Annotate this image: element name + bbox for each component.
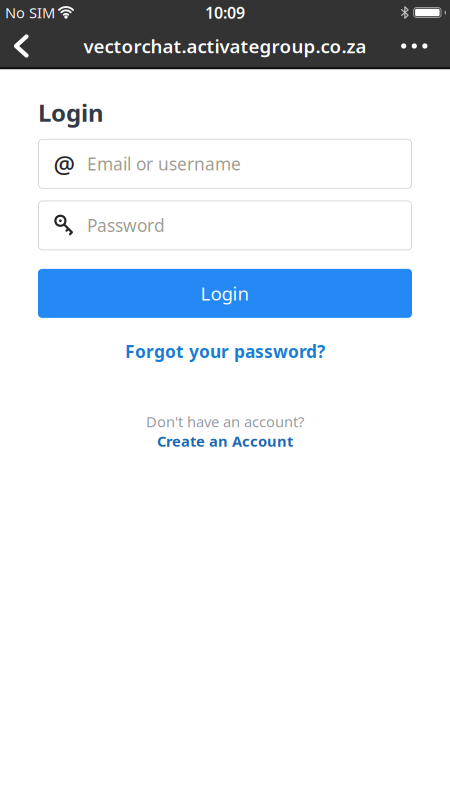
staticText: Login: [200, 281, 249, 306]
button[interactable]: Forgot your password?: [38, 340, 412, 363]
staticText: Password: [87, 214, 165, 237]
staticText: Email or username: [87, 152, 241, 175]
staticText: Login: [38, 96, 104, 128]
staticText: No SIM: [5, 3, 55, 22]
button[interactable]: Login: [38, 269, 412, 318]
secureTextField[interactable]: Password: [87, 214, 412, 237]
staticText: Create an Account: [157, 431, 293, 451]
staticText: Forgot your password?: [125, 340, 325, 363]
staticText: 10:09: [205, 2, 245, 23]
button[interactable]: Create an Account: [157, 431, 293, 451]
staticText: @: [53, 148, 75, 180]
staticText: Don't have an account?: [146, 412, 304, 431]
textField[interactable]: Email or username: [87, 152, 412, 175]
button[interactable]: Back: [0, 28, 26, 63]
staticText: vectorchat.activategroup.co.za: [83, 34, 366, 58]
button[interactable]: More options: [401, 31, 450, 61]
